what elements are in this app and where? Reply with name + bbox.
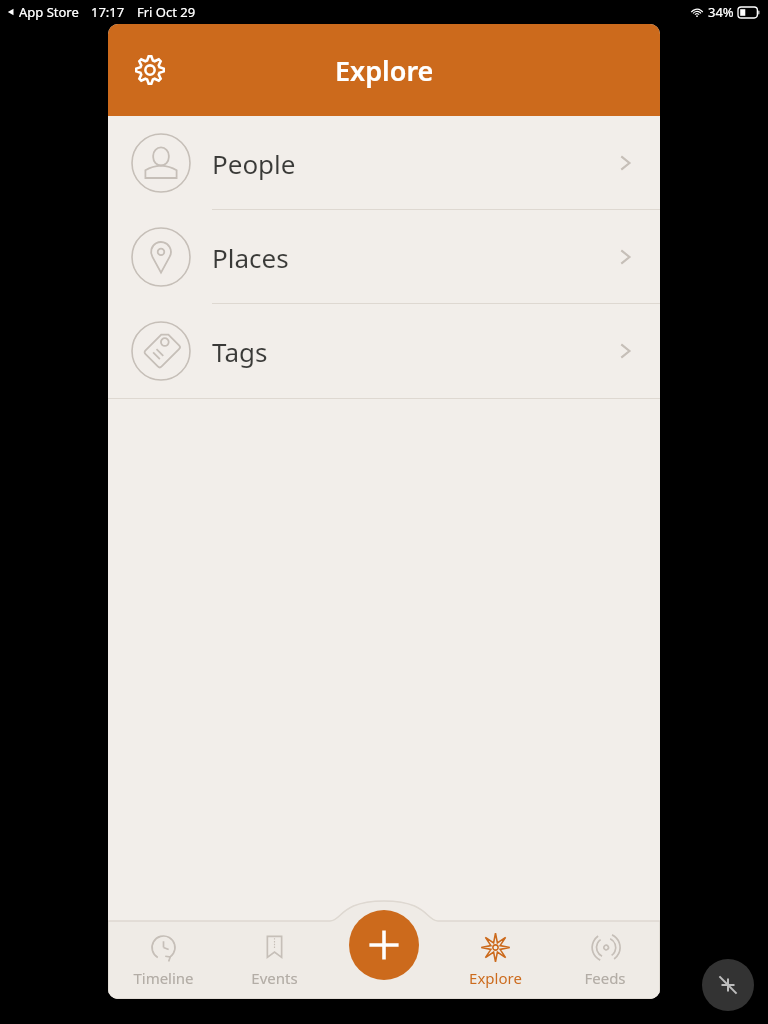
staticText: Timeline (133, 968, 194, 988)
button[interactable]: Feeds (550, 921, 660, 999)
button[interactable]: Timeline (108, 921, 219, 999)
button[interactable]: Events (219, 921, 330, 999)
staticText: App Store (19, 3, 79, 21)
button[interactable]: Tags (108, 304, 660, 398)
staticText: Feeds (584, 968, 626, 988)
staticText: 34% (708, 3, 734, 21)
staticText: Places (212, 240, 289, 275)
staticText: Explore (335, 52, 434, 89)
staticText: Tags (212, 334, 268, 369)
button[interactable]: Places (108, 210, 660, 304)
button[interactable]: People (108, 116, 660, 210)
staticText: Events (251, 968, 298, 988)
staticText: 17:17 (91, 3, 125, 21)
staticText: Explore (469, 968, 522, 988)
button[interactable]: Settings (126, 46, 174, 94)
button[interactable]: Collapse window (702, 959, 754, 1011)
button[interactable]: Explore (440, 921, 550, 999)
staticText: Fri Oct 29 (137, 3, 196, 21)
staticText: People (212, 146, 296, 181)
button[interactable]: Add (349, 910, 419, 980)
